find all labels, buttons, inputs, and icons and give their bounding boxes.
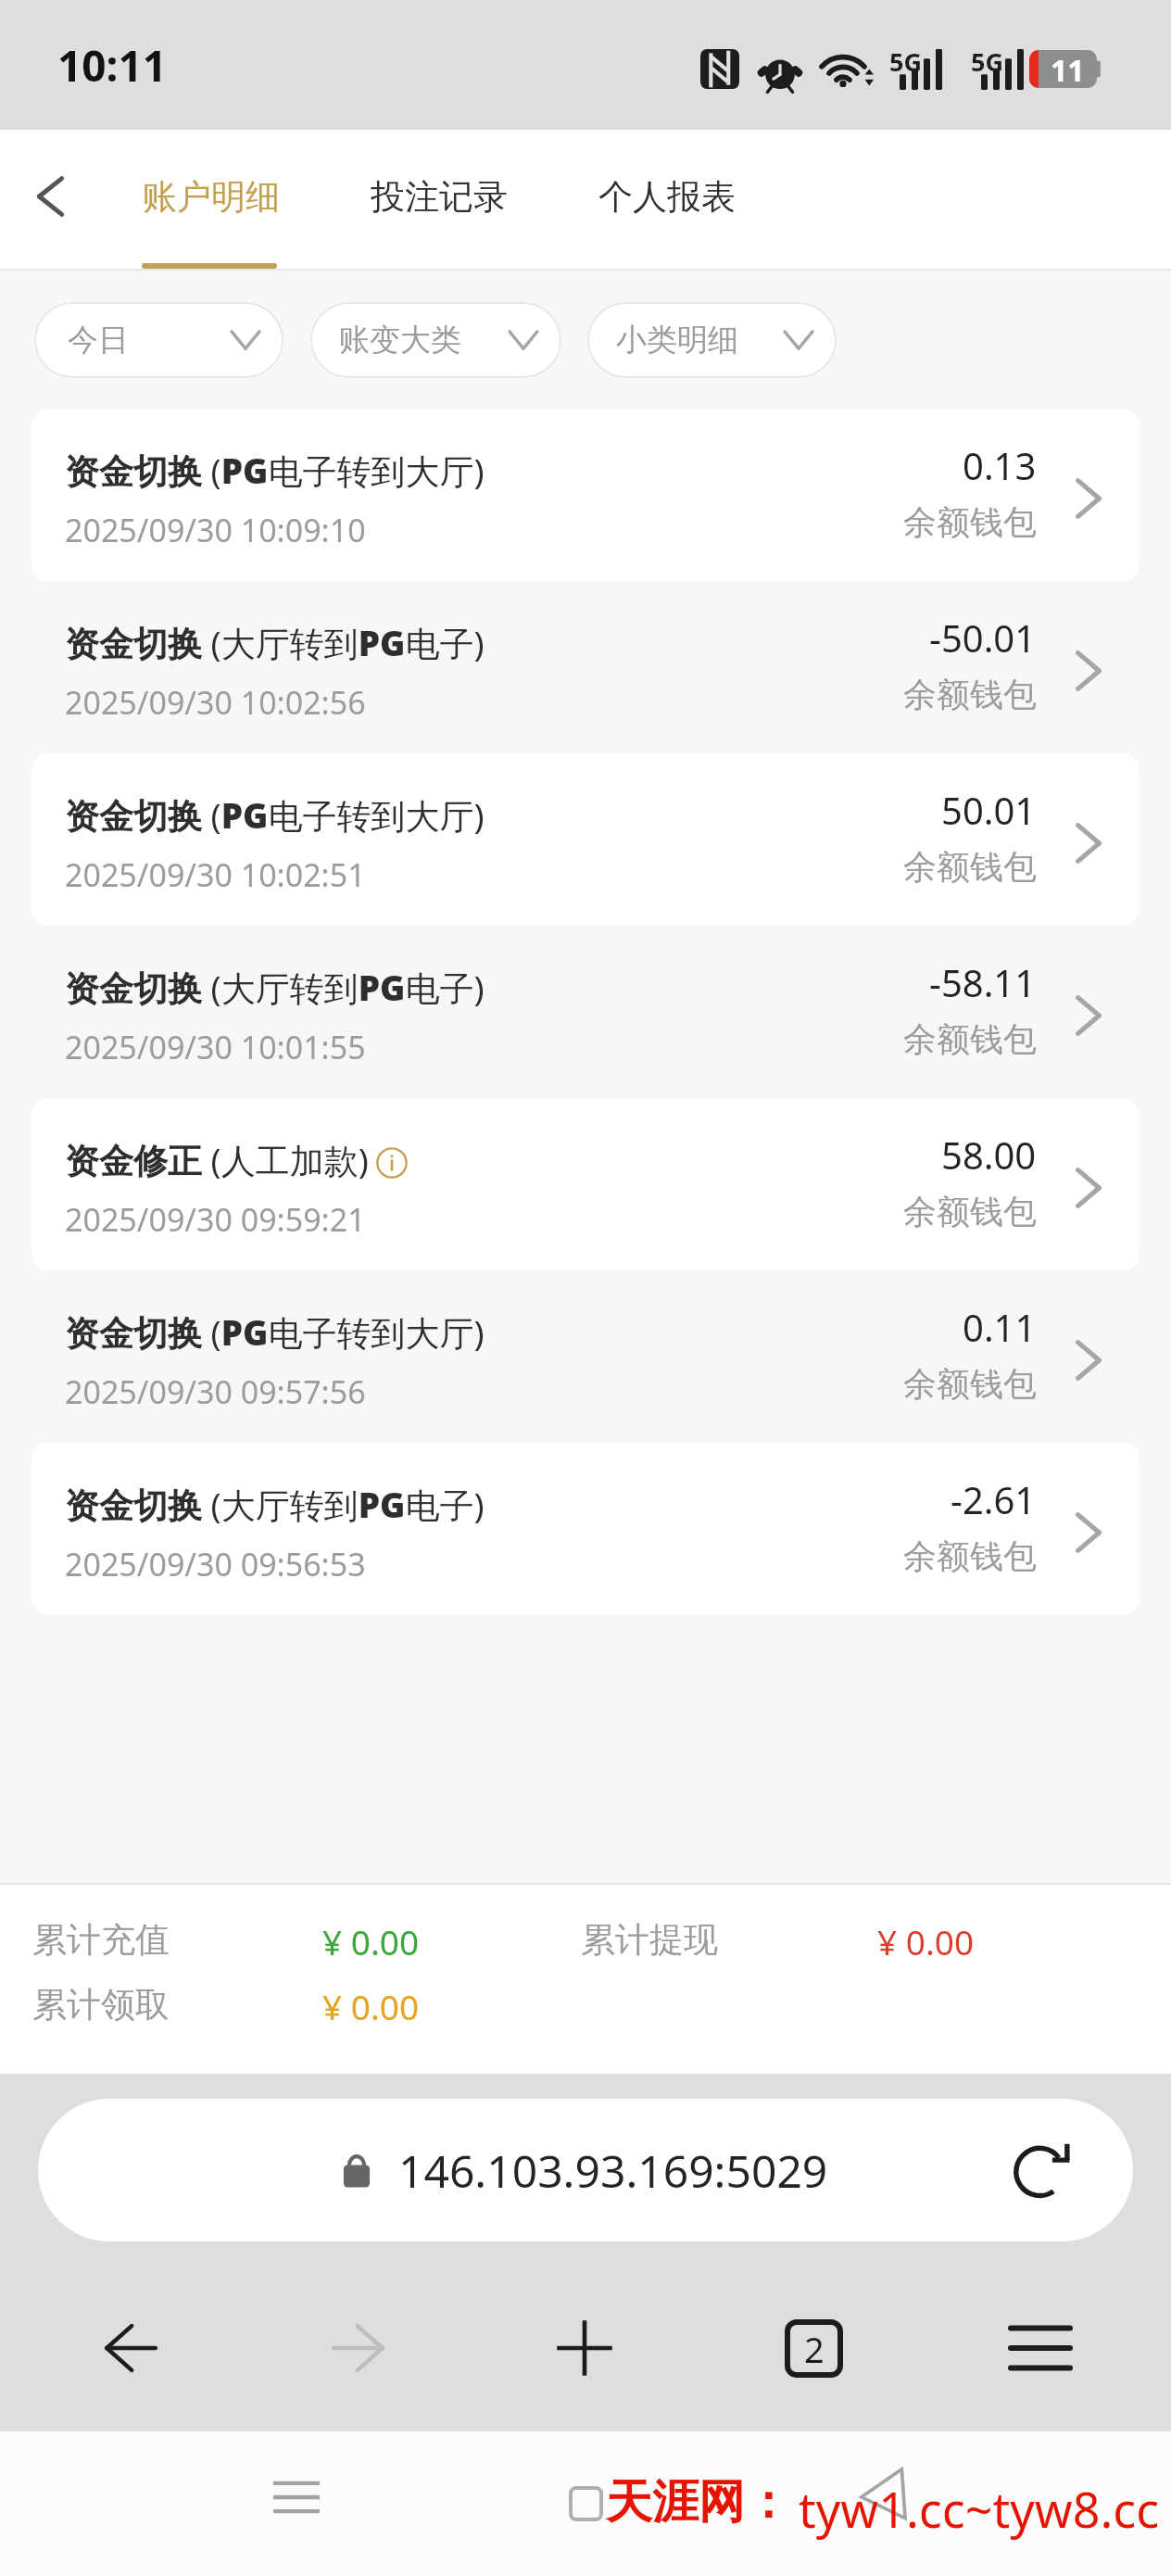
staticText: 投注记录 <box>371 175 508 219</box>
button[interactable]: Reload <box>998 2126 1087 2215</box>
button[interactable]: 账变大类 <box>310 302 561 378</box>
button[interactable]: 资金切换 (PG电子转到大厅) <box>31 409 1140 581</box>
staticText: 个人报表 <box>598 175 736 219</box>
staticText: 0.13 <box>963 440 1037 490</box>
staticText: 账变大类 <box>339 321 461 360</box>
staticText: 2025/09/30 10:02:51 <box>65 853 366 896</box>
staticText: 资金切换 (PG电子转到大厅) <box>65 447 485 494</box>
staticText: 余额钱包 <box>903 846 1037 888</box>
staticText: 146.103.93.169:5029 <box>398 2140 828 2201</box>
button[interactable]: 小类明细 <box>587 302 837 378</box>
staticText: 资金切换 (大厅转到PG电子) <box>65 1481 485 1528</box>
button[interactable]: 146.103.93.169:5029 <box>38 2099 1133 2241</box>
staticText: 资金切换 (大厅转到PG电子) <box>65 964 485 1011</box>
button[interactable]: Back <box>0 146 100 246</box>
staticText: 50.01 <box>941 785 1037 835</box>
staticText: 余额钱包 <box>903 501 1037 543</box>
staticText: 2025/09/30 09:56:53 <box>65 1543 366 1585</box>
staticText: 资金切换 (PG电子转到大厅) <box>65 1308 485 1356</box>
staticText: 余额钱包 <box>903 1191 1037 1232</box>
staticText: 账户明细 <box>143 175 280 219</box>
staticText: 5G <box>889 44 922 79</box>
button[interactable]: 投注记录 <box>348 130 530 263</box>
staticText: 10:11 <box>57 36 168 95</box>
staticText: 小类明细 <box>616 321 738 360</box>
staticText: 2025/09/30 09:57:56 <box>65 1370 366 1413</box>
staticText: 余额钱包 <box>903 1363 1037 1405</box>
staticText: tyw1.cc~tyw8.cc <box>799 2476 1160 2542</box>
staticText: 0.11 <box>963 1302 1037 1352</box>
button[interactable]: 今日 <box>34 302 283 378</box>
button[interactable]: 账户明细 <box>120 130 302 263</box>
staticText: ¥ 0.00 <box>322 1918 420 1964</box>
staticText: -50.01 <box>929 612 1037 663</box>
staticText: 58.00 <box>941 1130 1037 1180</box>
staticText: 2 <box>804 2325 825 2373</box>
staticText: 资金切换 (大厅转到PG电子) <box>65 619 485 666</box>
staticText: 余额钱包 <box>903 674 1037 715</box>
button[interactable]: 资金切换 (大厅转到PG电子) <box>31 1443 1140 1615</box>
button[interactable]: Tabs <box>749 2283 878 2413</box>
staticText: 今日 <box>68 321 129 360</box>
staticText: -58.11 <box>929 957 1037 1007</box>
button[interactable]: Forward <box>294 2283 423 2413</box>
staticText: 余额钱包 <box>903 1535 1037 1577</box>
staticText: 5G <box>971 44 1003 79</box>
button[interactable]: Menu <box>976 2283 1105 2413</box>
button[interactable]: New tab <box>520 2283 649 2413</box>
staticText: 天涯网： <box>606 2473 791 2532</box>
button[interactable]: 资金修正 (人工加款) <box>31 1098 1140 1270</box>
button[interactable]: 资金切换 (大厅转到PG电子) <box>31 581 1140 753</box>
staticText: 累计提现 <box>581 1918 718 1962</box>
button[interactable]: 资金切换 (PG电子转到大厅) <box>31 1270 1140 1443</box>
button[interactable]: Back <box>66 2283 195 2413</box>
staticText: 余额钱包 <box>903 1018 1037 1060</box>
staticText: 2025/09/30 09:59:21 <box>65 1198 366 1241</box>
staticText: 累计领取 <box>32 1983 170 2027</box>
staticText: -2.61 <box>951 1474 1037 1524</box>
button[interactable]: 个人报表 <box>576 130 758 263</box>
staticText: ¥ 0.00 <box>877 1918 975 1964</box>
staticText: 11 <box>1051 50 1085 88</box>
button[interactable]: 资金切换 (大厅转到PG电子) <box>31 926 1140 1098</box>
staticText: 2025/09/30 10:09:10 <box>65 509 366 551</box>
staticText: 2025/09/30 10:01:55 <box>65 1026 366 1068</box>
button[interactable]: 资金切换 (PG电子转到大厅) <box>31 753 1140 926</box>
staticText: ¥ 0.00 <box>322 1983 420 2029</box>
staticText: 2025/09/30 10:02:56 <box>65 681 366 724</box>
staticText: 资金修正 (人工加款) <box>65 1136 369 1183</box>
staticText: 资金切换 (PG电子转到大厅) <box>65 791 485 839</box>
button[interactable]: Menu <box>255 2456 338 2539</box>
staticText: 累计充值 <box>32 1918 170 1962</box>
